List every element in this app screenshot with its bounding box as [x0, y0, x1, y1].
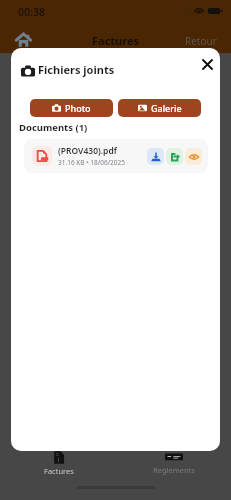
button[interactable]: Reglements	[150, 450, 198, 476]
staticText: 00:38	[18, 5, 45, 19]
staticText: Factures	[44, 466, 74, 476]
staticText: Fichiers joints	[38, 62, 115, 77]
button[interactable]: Download	[147, 148, 164, 165]
staticText: Factures	[92, 33, 140, 48]
staticText: Photo	[65, 102, 91, 114]
button[interactable]: Home	[16, 33, 31, 48]
button[interactable]: Factures	[38, 450, 79, 477]
button[interactable]: (PROV430).pdf	[24, 139, 208, 173]
button[interactable]: View	[185, 148, 202, 165]
staticText: Documents (1)	[19, 121, 88, 134]
button[interactable]: Galerie	[118, 99, 201, 117]
staticText: 31.16 KB • 18/06/2025	[58, 158, 125, 167]
button[interactable]: Share	[166, 148, 183, 165]
button[interactable]: Retour	[185, 34, 217, 48]
staticText: Galerie	[151, 102, 182, 114]
staticText: Reglements	[153, 465, 195, 475]
button[interactable]: Close	[198, 55, 216, 73]
button[interactable]: Photo	[30, 99, 113, 117]
staticText: (PROV430).pdf	[58, 145, 117, 157]
